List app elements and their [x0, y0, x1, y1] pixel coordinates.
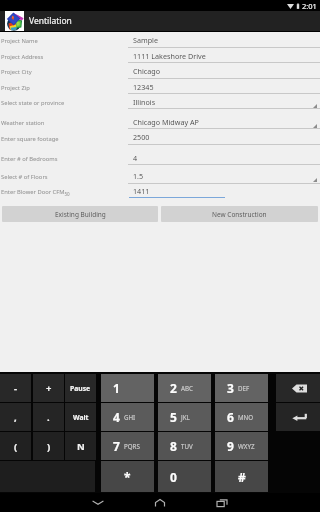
staticText: Illinois — [133, 97, 156, 107]
staticText: ) — [47, 440, 51, 453]
button[interactable] — [0, 183, 320, 200]
button[interactable]: ) — [33, 432, 64, 460]
button[interactable]: 0 — [158, 461, 211, 492]
button[interactable]: Existing Building — [2, 206, 158, 222]
staticText: Existing Building — [55, 210, 106, 219]
staticText: GHI — [124, 413, 136, 421]
staticText: 1 — [113, 380, 120, 396]
button[interactable]: 3 — [215, 374, 268, 402]
button[interactable]: 8 — [158, 432, 211, 460]
staticText: - — [14, 382, 18, 395]
button[interactable]: - — [0, 374, 31, 402]
staticText: New Construction — [212, 210, 267, 219]
staticText: 4 — [113, 409, 120, 425]
button[interactable]: Enter — [276, 403, 320, 431]
staticText: 5 — [170, 409, 177, 425]
staticText: 12345 — [133, 82, 154, 92]
button[interactable] — [0, 128, 320, 145]
button[interactable]: Pause — [65, 374, 96, 402]
staticText: WXYZ — [238, 442, 255, 450]
button[interactable]: , — [0, 403, 31, 431]
staticText: Pause — [70, 384, 91, 393]
button[interactable]: 5 — [158, 403, 211, 431]
button[interactable]: Wait — [65, 403, 96, 431]
button[interactable]: Ventilation — [0, 11, 320, 31]
staticText: * — [124, 469, 131, 485]
button[interactable] — [0, 164, 320, 183]
button[interactable] — [0, 144, 320, 165]
staticText: . — [47, 411, 50, 424]
staticText: Project City — [1, 68, 32, 76]
staticText: 0 — [170, 469, 177, 485]
staticText: Enter square footage — [1, 135, 59, 143]
staticText: 1111 Lakeshore Drive — [133, 51, 206, 61]
button[interactable]: . — [33, 403, 64, 431]
staticText: 3 — [227, 380, 234, 396]
button[interactable]: + — [33, 374, 64, 402]
staticText: JKL — [181, 413, 190, 421]
button[interactable] — [0, 93, 320, 109]
staticText: 2 — [170, 380, 177, 396]
staticText: Enter Blower Door CFM50 — [1, 188, 70, 197]
staticText: + — [46, 382, 52, 395]
button[interactable]: 2 — [158, 374, 211, 402]
staticText: Select # of Floors — [1, 173, 48, 181]
staticText: 2500 — [133, 132, 150, 142]
staticText: PQRS — [124, 442, 140, 450]
button[interactable] — [0, 108, 320, 129]
staticText: Chicago — [133, 66, 161, 76]
staticText: N — [77, 440, 85, 453]
button[interactable]: 4 — [101, 403, 154, 431]
button[interactable] — [0, 62, 320, 78]
button[interactable] — [0, 47, 320, 64]
staticText: Ventilation — [29, 15, 72, 27]
staticText: ABC — [181, 384, 193, 392]
staticText: 4 — [133, 153, 138, 163]
staticText: 8 — [170, 438, 177, 454]
staticText: Project Address — [1, 53, 44, 61]
button[interactable]: * — [101, 461, 154, 492]
button[interactable]: 7 — [101, 432, 154, 460]
button[interactable]: N — [65, 432, 96, 460]
staticText: Wait — [73, 413, 89, 422]
button[interactable] — [0, 78, 320, 95]
staticText: Enter # of Bedrooms — [1, 155, 58, 163]
staticText: DEF — [238, 384, 250, 392]
staticText: MNO — [238, 413, 254, 421]
staticText: 1.5 — [133, 171, 144, 181]
button[interactable] — [0, 32, 320, 48]
staticText: , — [14, 411, 17, 424]
staticText: 7 — [113, 438, 120, 454]
staticText: # — [238, 469, 246, 485]
staticText: Sample — [133, 35, 159, 45]
staticText: 9 — [227, 438, 234, 454]
button[interactable]: Back — [67, 493, 129, 512]
staticText: TUV — [181, 442, 193, 450]
staticText: Chicago Midway AP — [133, 117, 199, 127]
button[interactable]: New Construction — [161, 206, 318, 222]
staticText: ( — [14, 440, 18, 453]
staticText: Project Name — [1, 37, 38, 45]
button[interactable]: Home — [129, 493, 191, 512]
button[interactable]: 6 — [215, 403, 268, 431]
staticText: Weather station — [1, 119, 45, 127]
button[interactable]: Recents — [191, 493, 253, 512]
staticText: 1411 — [133, 186, 150, 196]
staticText: Select state or province — [1, 99, 65, 107]
button[interactable]: 9 — [215, 432, 268, 460]
button[interactable]: Delete — [276, 374, 320, 402]
button[interactable]: ( — [0, 432, 31, 460]
button[interactable]: 1 — [101, 374, 154, 402]
staticText: 6 — [227, 409, 234, 425]
staticText: Project Zip — [1, 84, 30, 92]
staticText: 2:01 — [302, 1, 317, 11]
button[interactable]: # — [215, 461, 268, 492]
